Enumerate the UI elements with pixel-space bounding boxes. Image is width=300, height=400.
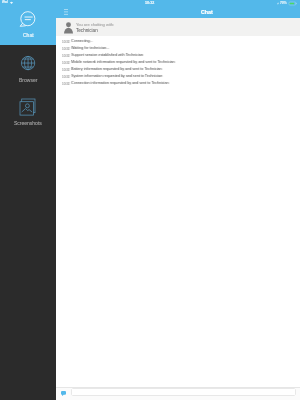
staticText: 10:32 — [145, 1, 155, 5]
button[interactable]: Predefined messages — [61, 391, 66, 396]
staticText: Connection information requested by and … — [71, 81, 169, 85]
staticText: 10:32 — [62, 82, 70, 85]
button[interactable]: Message input — [71, 388, 296, 396]
staticText: Connecting... — [71, 39, 93, 43]
staticText: Connection information requested by and … — [72, 81, 170, 85]
staticText: 10:32 — [62, 61, 70, 64]
staticText: Mobile network information requested by … — [71, 60, 175, 64]
staticText: 10:32 — [63, 68, 71, 71]
staticText: iPad — [2, 1, 8, 4]
staticText: 10:32 — [62, 40, 70, 43]
staticText: Waiting for technician... — [71, 46, 110, 50]
staticText: Browser — [19, 77, 38, 83]
staticText: 79% — [280, 1, 287, 5]
button[interactable]: Screenshots tab — [0, 90, 56, 130]
staticText: Screenshots — [14, 120, 42, 126]
staticText: Battery information requested by and sen… — [72, 67, 163, 71]
button[interactable]: Browser tab — [0, 46, 56, 86]
staticText: 10:32 — [63, 47, 71, 50]
staticText: Battery information requested by and sen… — [71, 67, 162, 71]
staticText: Waiting for technician... — [72, 46, 111, 50]
staticText: 10:32 — [63, 82, 71, 85]
staticText: Support session established with Technic… — [72, 53, 144, 57]
staticText: Connecting... — [72, 39, 94, 43]
staticText: You are chatting with: — [76, 22, 115, 26]
staticText: 10:32 — [63, 40, 71, 43]
staticText: System information requested by and sent… — [72, 74, 164, 78]
staticText: 10:32 — [63, 61, 71, 64]
staticText: System information requested by and sent… — [71, 74, 163, 78]
staticText: Support session established with Technic… — [71, 53, 143, 57]
staticText: Technician — [76, 28, 98, 33]
staticText: Technician — [76, 28, 98, 33]
button[interactable]: Menu — [64, 9, 68, 15]
staticText: 10:32 — [62, 75, 70, 78]
staticText: 10:32 — [62, 68, 70, 71]
staticText: You are chatting with: — [76, 22, 115, 26]
staticText: 10:32 — [62, 54, 70, 57]
staticText: Chat — [23, 32, 34, 38]
staticText: Chat — [201, 9, 213, 15]
button[interactable]: Chat tab — [0, 0, 56, 45]
staticText: 10:32 — [62, 47, 70, 50]
staticText: 10:32 — [63, 75, 71, 78]
staticText: Mobile network information requested by … — [72, 60, 176, 64]
staticText: 10:32 — [63, 54, 71, 57]
